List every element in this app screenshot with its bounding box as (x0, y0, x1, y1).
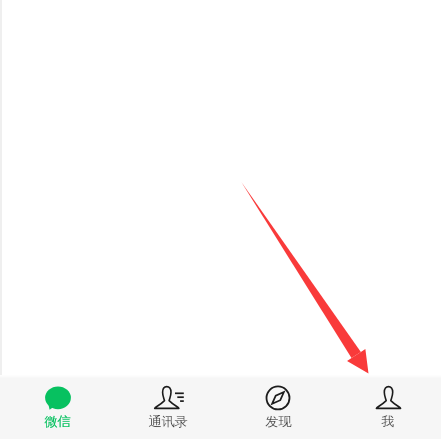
button[interactable]: Contacts (113, 378, 223, 439)
button[interactable]: Discover (223, 378, 333, 439)
staticText: 通讯录 (148, 413, 188, 430)
staticText: 我 (381, 413, 395, 430)
staticText: 微信 (44, 413, 71, 430)
staticText: 发现 (265, 413, 292, 430)
button[interactable]: Me (333, 378, 441, 439)
button[interactable]: WeChat (2, 378, 113, 439)
